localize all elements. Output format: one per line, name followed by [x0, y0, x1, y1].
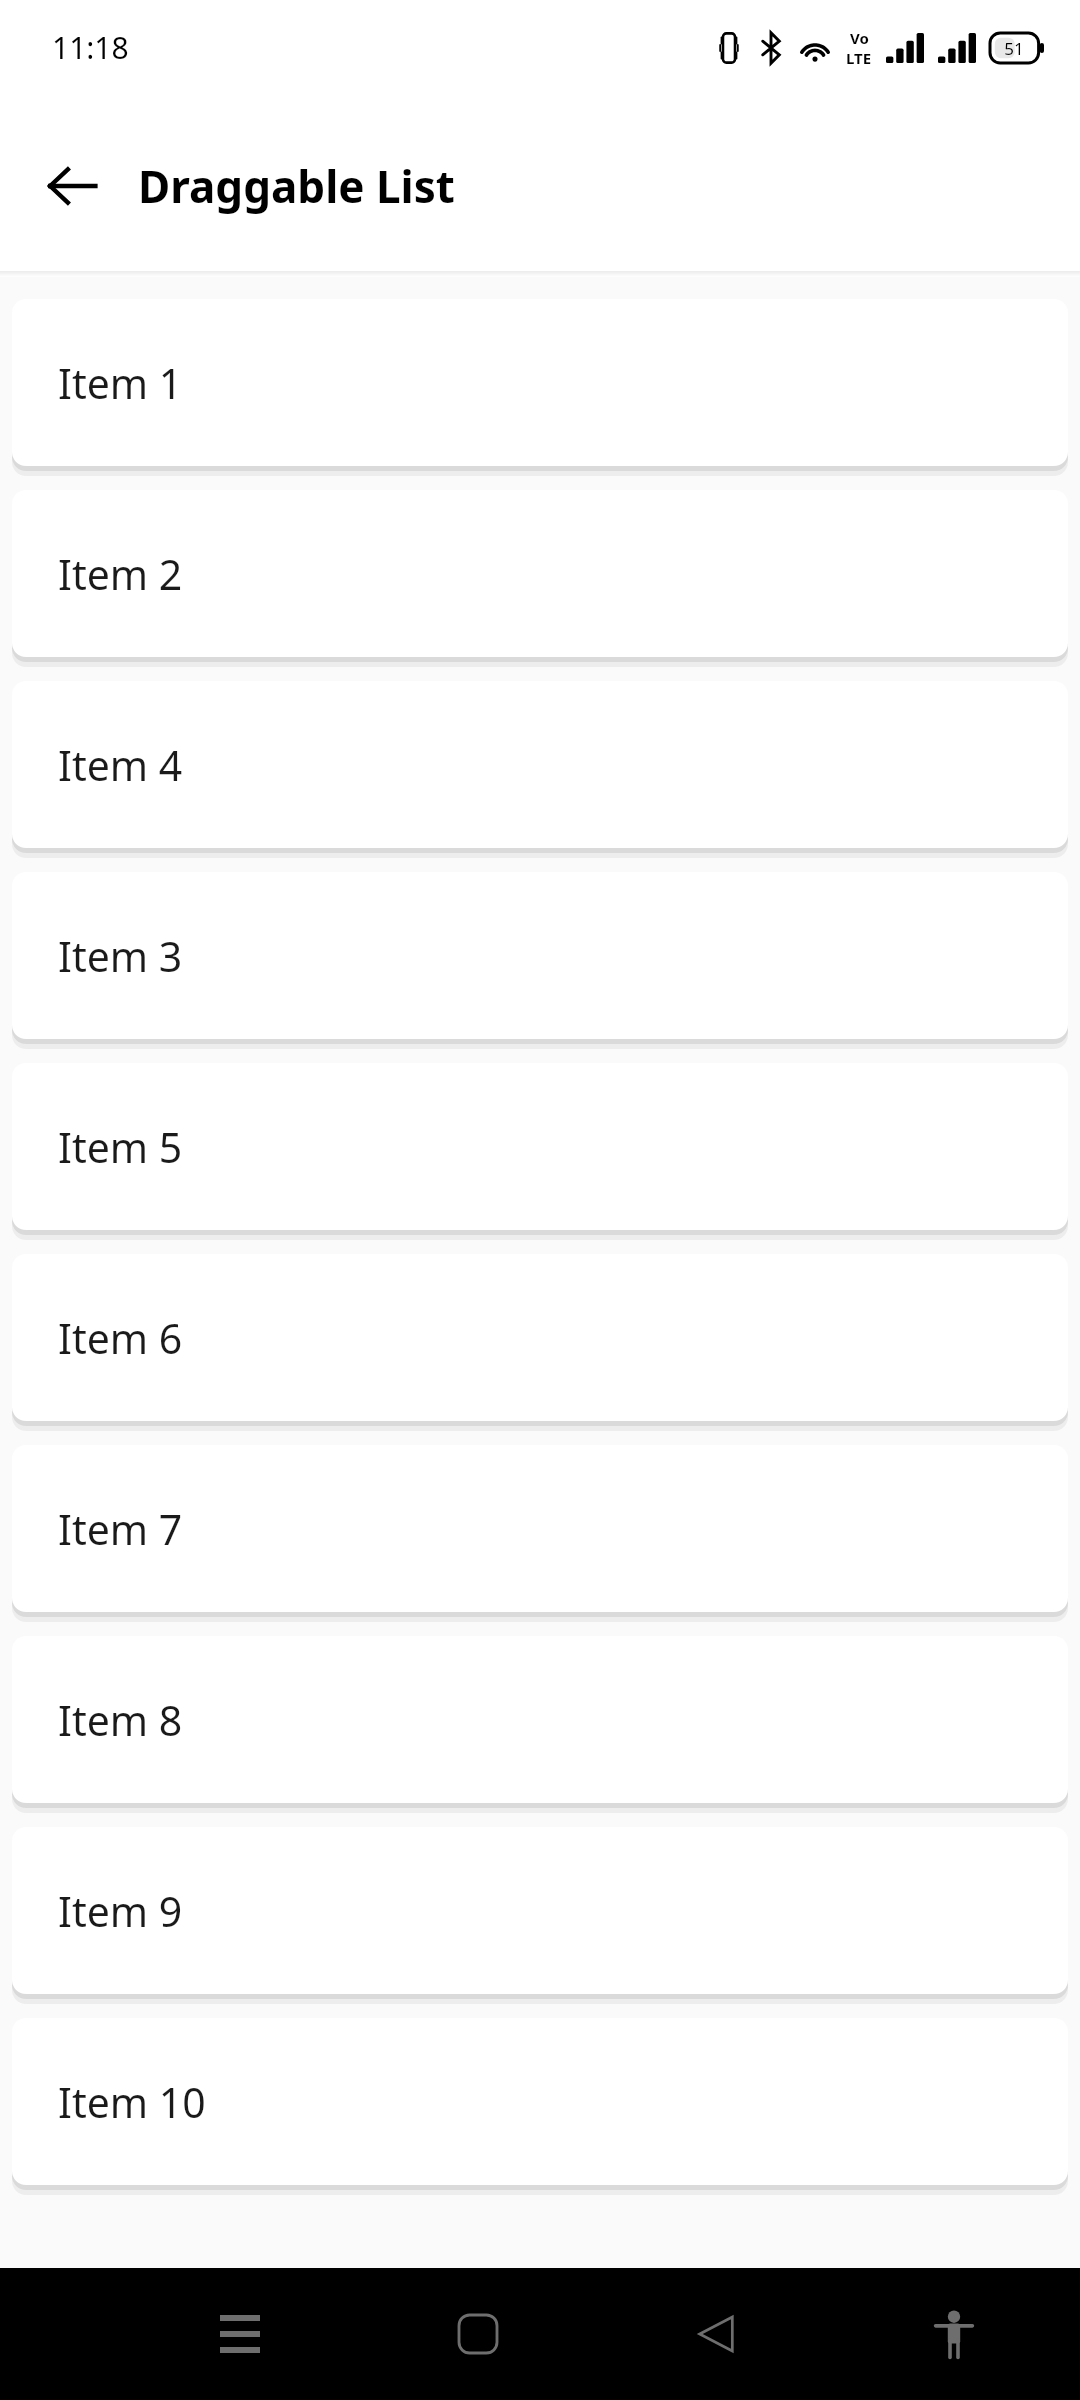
staticText: LTE: [846, 48, 872, 68]
button[interactable]: Item 2: [12, 490, 1068, 657]
staticText: 11:18: [52, 27, 129, 68]
staticText: Item 10: [58, 2074, 206, 2130]
staticText: Item 5: [58, 1119, 183, 1175]
button[interactable]: Back: [28, 142, 116, 230]
staticText: Item 4: [58, 737, 183, 793]
staticText: Item 7: [58, 1501, 183, 1557]
button[interactable]: Item 7: [12, 1445, 1068, 1612]
staticText: Item 8: [58, 1692, 183, 1748]
staticText: Item 6: [58, 1310, 183, 1366]
staticText: Vo: [850, 28, 869, 48]
button[interactable]: Item 1: [12, 299, 1068, 466]
button[interactable]: Item 5: [12, 1063, 1068, 1230]
button[interactable]: Back: [668, 2279, 764, 2389]
staticText: Item 2: [58, 546, 183, 602]
button[interactable]: Item 9: [12, 1827, 1068, 1994]
staticText: 51: [1004, 37, 1024, 60]
staticText: Item 1: [58, 355, 183, 411]
button[interactable]: Item 3: [12, 872, 1068, 1039]
staticText: Item 9: [58, 1883, 183, 1939]
button[interactable]: Item 8: [12, 1636, 1068, 1803]
button[interactable]: Item 4: [12, 681, 1068, 848]
button[interactable]: Home: [430, 2279, 526, 2389]
button[interactable]: Recent apps: [192, 2279, 288, 2389]
staticText: Draggable List: [138, 156, 455, 216]
button[interactable]: Item 6: [12, 1254, 1068, 1421]
button[interactable]: Item 10: [12, 2018, 1068, 2185]
staticText: Item 3: [58, 928, 183, 984]
button[interactable]: Accessibility: [906, 2279, 1002, 2389]
